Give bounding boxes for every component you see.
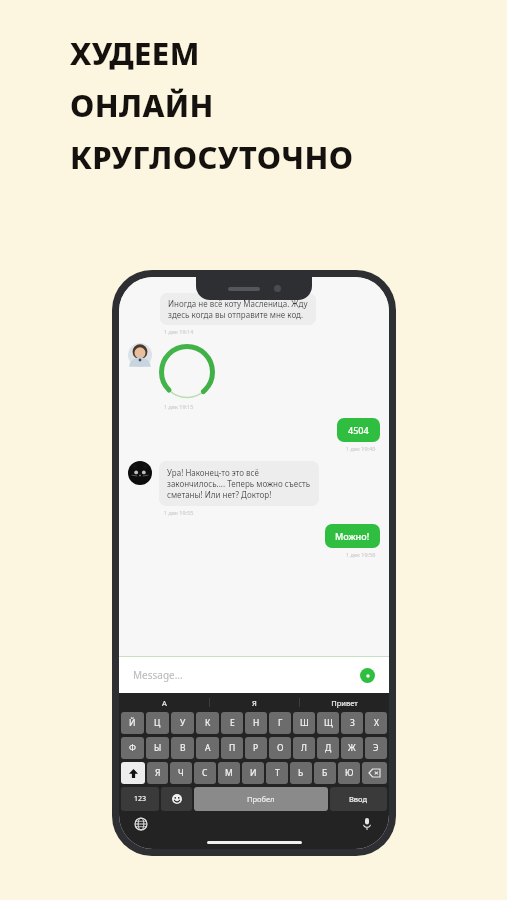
staticText: А	[162, 698, 167, 708]
staticText: У	[180, 717, 186, 729]
staticText: Пробел	[247, 794, 275, 804]
staticText: Х	[374, 717, 379, 729]
staticText: 1 дек 19:55	[164, 509, 194, 516]
staticText: З	[350, 717, 355, 729]
button[interactable]: Д	[317, 737, 339, 759]
button[interactable]: Ж	[341, 737, 363, 759]
staticText: А	[205, 742, 211, 754]
staticText: Р	[253, 742, 259, 754]
button[interactable]: Можно!	[325, 524, 380, 548]
button[interactable]: И	[242, 762, 264, 784]
staticText: Л	[301, 742, 307, 754]
button[interactable]: Message...	[133, 668, 360, 682]
button[interactable]: Б	[314, 762, 336, 784]
button[interactable]: Э	[365, 737, 387, 759]
button[interactable]: Л	[293, 737, 315, 759]
staticText: Щ	[324, 717, 333, 729]
button[interactable]: С	[194, 762, 216, 784]
button[interactable]: Ь	[290, 762, 312, 784]
button[interactable]: Ч	[170, 762, 192, 784]
staticText: И	[250, 767, 257, 779]
button[interactable]: Привет	[300, 693, 389, 712]
button[interactable]: Щ	[317, 712, 339, 734]
staticText: Message...	[133, 668, 183, 682]
staticText: 1 дек 19:15	[164, 403, 194, 410]
staticText: КРУГЛОСУТОЧНО	[70, 136, 354, 178]
staticText: Ц	[154, 717, 161, 729]
staticText: К	[205, 717, 211, 729]
staticText: М	[225, 767, 233, 779]
staticText: Е	[230, 717, 235, 729]
button[interactable]: Пробел	[194, 787, 328, 811]
staticText: Ш	[300, 717, 309, 729]
staticText: В	[180, 742, 186, 754]
button[interactable]: Я	[210, 693, 299, 712]
button[interactable]: Е	[221, 712, 243, 734]
button[interactable]: Ш	[293, 712, 315, 734]
staticText: С	[202, 767, 208, 779]
staticText: О	[277, 742, 284, 754]
button[interactable]: Н	[245, 712, 267, 734]
staticText: Можно!	[335, 530, 370, 542]
staticText: Д	[325, 742, 332, 754]
button[interactable]: Ы	[146, 737, 169, 759]
button[interactable]: Г	[269, 712, 291, 734]
button[interactable]: У	[171, 712, 194, 734]
staticText: 4504	[348, 424, 369, 436]
button[interactable]: Ввод	[330, 787, 387, 811]
staticText: Ввод	[349, 794, 368, 804]
staticText: Ю	[345, 767, 354, 779]
staticText: 1 дек 19:56	[346, 551, 376, 558]
button[interactable]: Send	[360, 668, 375, 683]
button[interactable]: Т	[266, 762, 288, 784]
staticText: Б	[322, 767, 328, 779]
staticText: Я	[155, 767, 161, 779]
staticText: Ь	[298, 767, 304, 779]
button[interactable]: Ц	[146, 712, 169, 734]
staticText: Г	[278, 717, 283, 729]
button[interactable]: З	[341, 712, 363, 734]
button[interactable]: В	[171, 737, 194, 759]
button[interactable]: Я	[147, 762, 168, 784]
staticText: Я	[252, 698, 257, 708]
staticText: Ж	[348, 742, 356, 754]
button[interactable]: 123	[121, 787, 159, 811]
staticText: 123	[134, 794, 147, 804]
staticText: 1 дек 19:14	[164, 328, 194, 335]
staticText: Ч	[178, 767, 184, 779]
button[interactable]: Change language	[133, 816, 149, 832]
staticText: Ф	[129, 742, 136, 754]
staticText: Э	[373, 742, 379, 754]
button[interactable]: О	[269, 737, 291, 759]
button[interactable]: Emoji	[161, 787, 192, 811]
staticText: Иногда не всё коту Масленица. Жду здесь …	[168, 298, 308, 320]
button[interactable]: Voice input	[359, 816, 375, 832]
staticText: Ура! Наконец-то это всё закончилось.... …	[167, 467, 311, 500]
staticText: Т	[275, 767, 280, 779]
button[interactable]: М	[218, 762, 240, 784]
staticText: ХУДЕЕМ	[70, 32, 200, 74]
button[interactable]: К	[196, 712, 219, 734]
button[interactable]: Й	[121, 712, 144, 734]
button[interactable]: Shift	[121, 762, 145, 784]
button[interactable]: Backspace	[362, 762, 387, 784]
button[interactable]: А	[196, 737, 219, 759]
staticText: Привет	[331, 698, 358, 708]
staticText: Ы	[154, 742, 162, 754]
button[interactable]: Ф	[121, 737, 144, 759]
button[interactable]: Р	[245, 737, 267, 759]
button[interactable]: 4504	[337, 418, 380, 442]
staticText: ОНЛАЙН	[70, 84, 214, 126]
button[interactable]: Ю	[338, 762, 360, 784]
staticText: Й	[129, 717, 136, 729]
staticText: 1 дек 19:40	[346, 445, 376, 452]
button[interactable]: П	[221, 737, 243, 759]
staticText: П	[229, 742, 236, 754]
button[interactable]: Х	[365, 712, 387, 734]
staticText: Н	[253, 717, 260, 729]
button[interactable]: А	[119, 693, 209, 712]
